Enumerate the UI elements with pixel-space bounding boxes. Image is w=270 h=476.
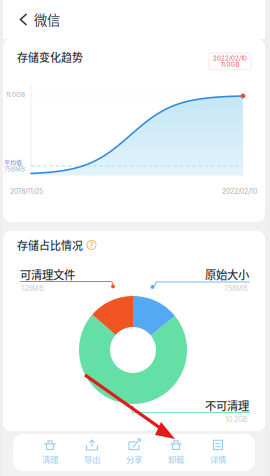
- staticText: 758MB: [224, 284, 248, 293]
- button[interactable]: 清理: [29, 434, 71, 471]
- button[interactable]: 导出: [71, 434, 113, 471]
- staticText: 平均值: [4, 158, 22, 166]
- staticText: 10.2GB: [225, 415, 248, 424]
- staticText: 卸载: [168, 453, 184, 465]
- staticText: 分享: [126, 453, 142, 465]
- staticText: 存储变化趋势: [17, 49, 83, 65]
- staticText: 11.0GB: [6, 91, 25, 98]
- staticText: 微信: [34, 10, 60, 29]
- staticText: 2022/02/10: [222, 187, 257, 195]
- staticText: 详情: [210, 453, 226, 465]
- button[interactable]: 详情: [197, 434, 239, 471]
- staticText: 导出: [84, 453, 100, 465]
- staticText: 存储占比情况: [17, 237, 83, 253]
- staticText: 2022/02/10: [213, 54, 247, 62]
- staticText: 11.0GB: [220, 61, 239, 68]
- button[interactable]: 分享: [113, 434, 155, 471]
- staticText: 可清理文件: [20, 266, 75, 282]
- staticText: ?: [89, 240, 93, 249]
- button[interactable]: 卸载: [155, 434, 197, 471]
- staticText: 758MB: [4, 165, 25, 173]
- staticText: 126MB: [21, 284, 44, 293]
- staticText: 2018/11/25: [10, 187, 43, 195]
- staticText: 原始大小: [205, 266, 249, 282]
- staticText: 不可清理: [205, 397, 249, 413]
- button[interactable]: 微信: [3, 0, 72, 39]
- staticText: 清理: [42, 453, 58, 465]
